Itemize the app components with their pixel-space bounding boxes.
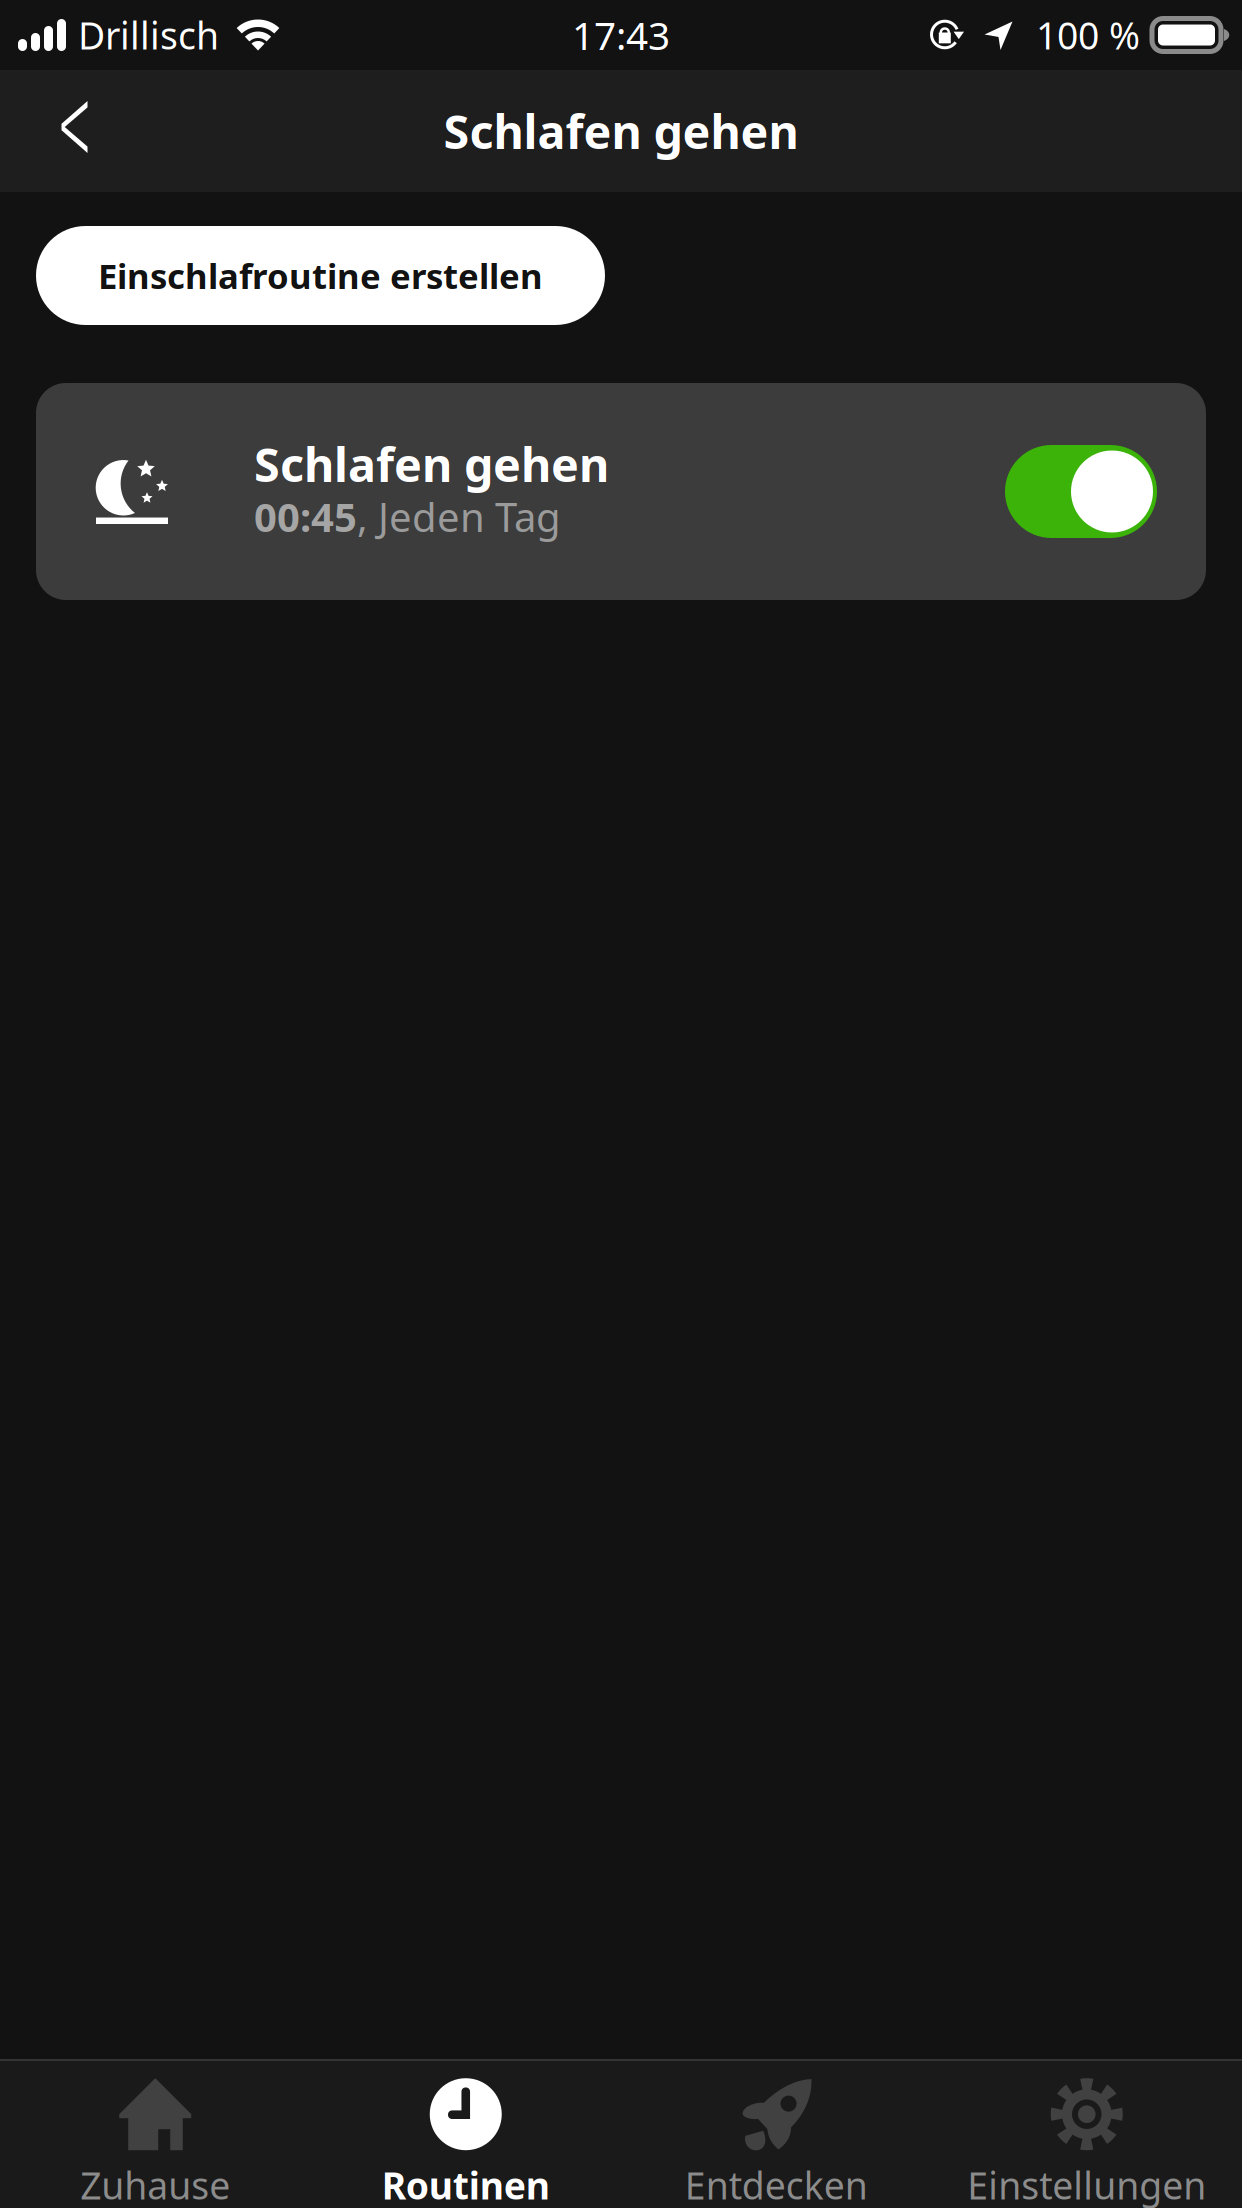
- button[interactable]: Zuhause: [0, 2061, 310, 2208]
- staticText: Entdecken: [685, 2160, 868, 2208]
- staticText: Drillisch: [78, 10, 219, 60]
- staticText: Zuhause: [80, 2160, 230, 2208]
- button[interactable]: Schlafen gehen: [36, 383, 1206, 600]
- staticText: Einschlafroutine erstellen: [98, 252, 543, 298]
- staticText: 17:43: [572, 9, 670, 61]
- button[interactable]: Zurück: [0, 70, 149, 192]
- staticText: Einstellungen: [967, 2160, 1206, 2208]
- button[interactable]: Entdecken: [621, 2061, 931, 2208]
- staticText: Schlafen gehen: [254, 433, 609, 495]
- staticText: 100 %: [1036, 10, 1140, 60]
- button[interactable]: Einschlafroutine erstellen: [36, 226, 605, 325]
- staticText: , Jeden Tag: [357, 490, 561, 543]
- staticText: Schlafen gehen: [443, 100, 798, 162]
- staticText: 00:45: [254, 490, 357, 543]
- button[interactable]: Einstellungen: [931, 2061, 1242, 2208]
- button[interactable]: Routinen: [310, 2061, 621, 2208]
- staticText: Routinen: [382, 2160, 550, 2208]
